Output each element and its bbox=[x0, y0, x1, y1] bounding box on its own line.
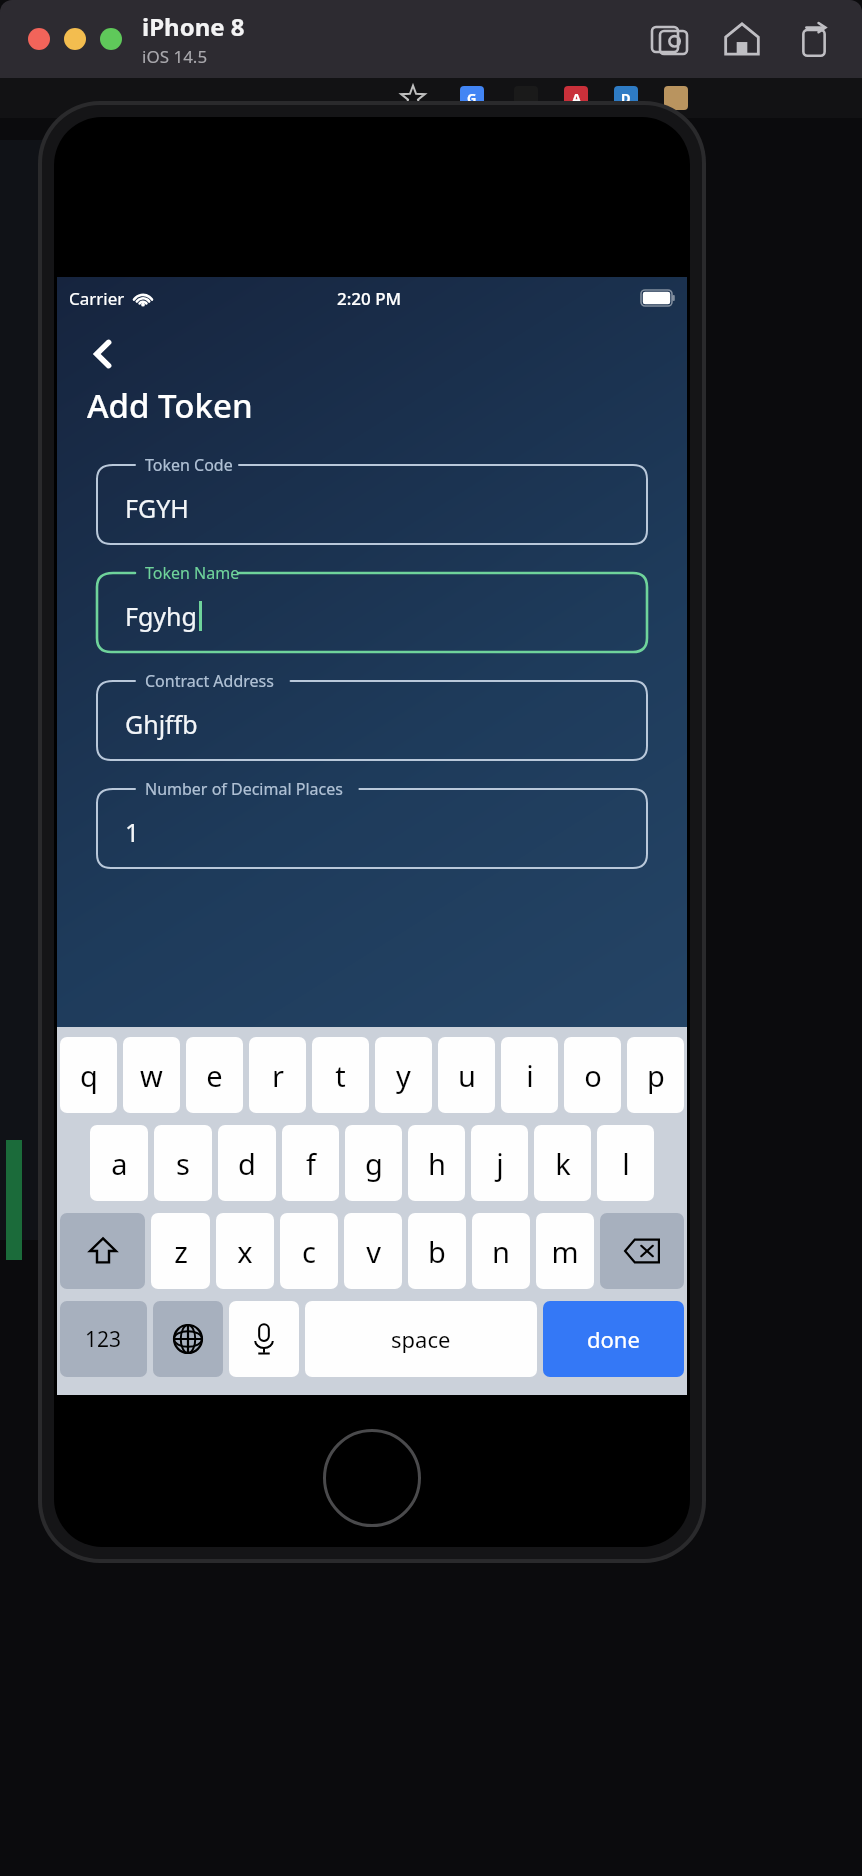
staticText: iPhone 8 bbox=[142, 10, 245, 43]
button[interactable]: w bbox=[123, 1037, 180, 1113]
staticText: m bbox=[551, 1232, 579, 1271]
button[interactable]: b bbox=[408, 1213, 466, 1289]
button[interactable]: Screenshot bbox=[648, 17, 692, 61]
button[interactable]: y bbox=[375, 1037, 432, 1113]
button[interactable]: Shift bbox=[60, 1213, 145, 1289]
button[interactable] bbox=[28, 28, 50, 50]
button[interactable]: Contract Address bbox=[97, 672, 647, 760]
button[interactable]: e bbox=[186, 1037, 243, 1113]
button[interactable] bbox=[64, 28, 86, 50]
staticText: r bbox=[272, 1056, 284, 1095]
staticText: c bbox=[302, 1232, 316, 1271]
staticText: Contract Address bbox=[145, 670, 274, 692]
button[interactable]: x bbox=[216, 1213, 274, 1289]
button[interactable]: done bbox=[543, 1301, 684, 1377]
staticText: 123 bbox=[85, 1325, 122, 1354]
staticText: g bbox=[365, 1144, 383, 1183]
button[interactable]: z bbox=[151, 1213, 210, 1289]
button[interactable]: l bbox=[597, 1125, 654, 1201]
button[interactable]: Token Code bbox=[97, 456, 647, 544]
staticText: 1 bbox=[125, 815, 140, 849]
staticText: Add Token bbox=[87, 383, 253, 428]
staticText: l bbox=[622, 1144, 630, 1183]
button[interactable]: u bbox=[438, 1037, 495, 1113]
button[interactable] bbox=[100, 28, 122, 50]
staticText: e bbox=[206, 1056, 223, 1095]
button[interactable]: 123 bbox=[60, 1301, 147, 1377]
button[interactable]: Dictation bbox=[229, 1301, 299, 1377]
staticText: s bbox=[176, 1144, 190, 1183]
button[interactable]: space bbox=[305, 1301, 537, 1377]
staticText: G bbox=[467, 89, 477, 107]
button[interactable]: c bbox=[280, 1213, 338, 1289]
staticText: z bbox=[174, 1232, 188, 1271]
button[interactable]: m bbox=[536, 1213, 594, 1289]
button[interactable]: d bbox=[218, 1125, 276, 1201]
button[interactable]: Backspace bbox=[600, 1213, 684, 1289]
staticText: Token Name bbox=[145, 562, 240, 584]
button[interactable]: v bbox=[344, 1213, 402, 1289]
button[interactable]: Home bbox=[720, 17, 764, 61]
button[interactable]: Back bbox=[77, 327, 131, 381]
staticText: n bbox=[492, 1232, 510, 1271]
button[interactable]: r bbox=[249, 1037, 306, 1113]
staticText: D bbox=[621, 89, 631, 107]
button[interactable]: h bbox=[408, 1125, 465, 1201]
staticText: Fgyhg bbox=[125, 599, 197, 633]
button[interactable]: a bbox=[90, 1125, 148, 1201]
staticText: done bbox=[587, 1324, 640, 1354]
button[interactable]: g bbox=[345, 1125, 402, 1201]
staticText: k bbox=[555, 1144, 571, 1183]
staticText: h bbox=[428, 1144, 446, 1183]
staticText: a bbox=[111, 1144, 128, 1183]
staticText: Number of Decimal Places bbox=[145, 778, 343, 800]
staticText: u bbox=[458, 1056, 476, 1095]
button[interactable]: Change keyboard bbox=[153, 1301, 223, 1377]
button[interactable]: p bbox=[627, 1037, 684, 1113]
button[interactable]: o bbox=[564, 1037, 621, 1113]
button[interactable]: n bbox=[472, 1213, 530, 1289]
button[interactable]: Token Name bbox=[97, 564, 647, 652]
staticText: t bbox=[335, 1056, 346, 1095]
button[interactable]: k bbox=[534, 1125, 591, 1201]
staticText: b bbox=[428, 1232, 446, 1271]
staticText: space bbox=[391, 1324, 451, 1354]
staticText: q bbox=[80, 1056, 98, 1095]
staticText: f bbox=[306, 1144, 316, 1183]
staticText: o bbox=[584, 1056, 602, 1095]
staticText: A bbox=[572, 89, 581, 107]
button[interactable]: s bbox=[154, 1125, 212, 1201]
staticText: 2:20 PM bbox=[337, 287, 402, 310]
staticText: i bbox=[526, 1056, 534, 1095]
staticText: x bbox=[237, 1232, 253, 1271]
staticText: j bbox=[496, 1144, 504, 1183]
staticText: Token Code bbox=[145, 454, 233, 476]
staticText: Carrier bbox=[69, 287, 125, 310]
button[interactable]: q bbox=[60, 1037, 117, 1113]
button[interactable]: i bbox=[501, 1037, 558, 1113]
button[interactable]: j bbox=[471, 1125, 528, 1201]
staticText: p bbox=[647, 1056, 665, 1095]
staticText: w bbox=[140, 1056, 163, 1095]
button[interactable]: t bbox=[312, 1037, 369, 1113]
staticText: v bbox=[366, 1232, 381, 1271]
staticText: d bbox=[238, 1144, 256, 1183]
staticText: y bbox=[396, 1056, 411, 1095]
button[interactable]: f bbox=[282, 1125, 339, 1201]
staticText: FGYH bbox=[125, 491, 189, 525]
staticText: Ghjffb bbox=[125, 707, 198, 741]
button[interactable]: Rotate bbox=[792, 17, 836, 61]
button[interactable]: Number of Decimal Places bbox=[97, 780, 647, 868]
staticText: iOS 14.5 bbox=[142, 45, 208, 68]
